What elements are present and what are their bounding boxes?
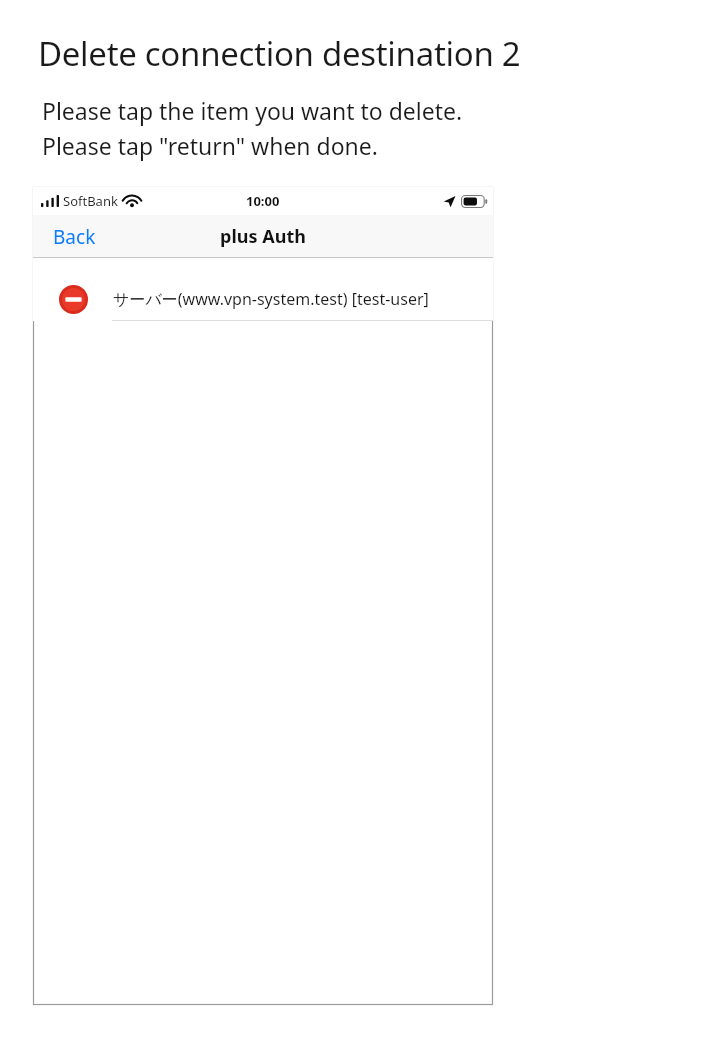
button[interactable]: Delete (33, 278, 493, 320)
staticText: サーバー(www.vpn-system.test) [test-user] (113, 288, 429, 310)
button[interactable]: Back (33, 216, 116, 258)
staticText: Delete connection destination 2 (38, 31, 521, 76)
staticText: Please tap "return" when done. (42, 130, 378, 161)
staticText: SoftBank (63, 192, 118, 210)
staticText: Please tap the item you want to delete. (42, 95, 463, 126)
staticText: Back (53, 224, 96, 250)
other: Delete (59, 285, 88, 314)
staticText: 10:00 (246, 192, 280, 210)
staticText: plus Auth (220, 224, 306, 249)
